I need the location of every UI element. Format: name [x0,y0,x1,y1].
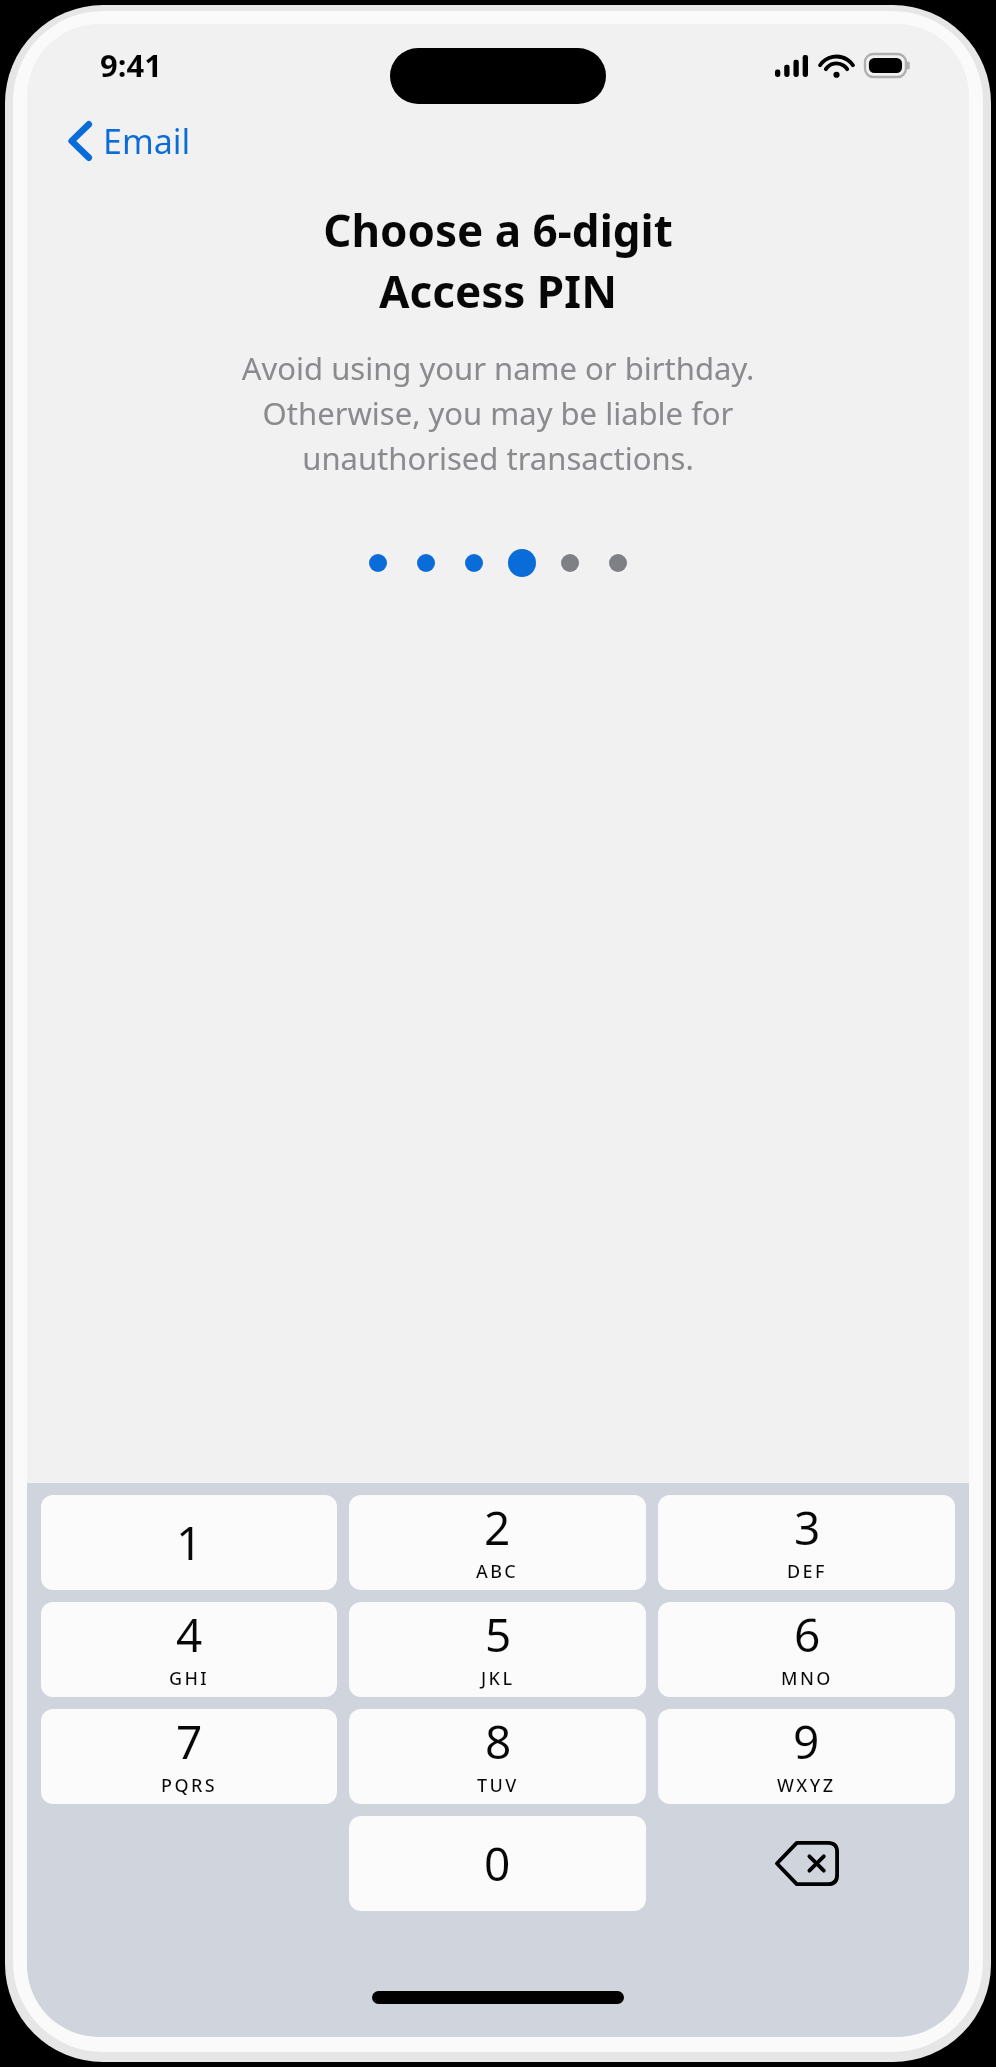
staticText: 9:41 [100,44,162,86]
button[interactable]: 1 [41,1495,337,1590]
staticText: Choose a 6-digit Access PIN [27,200,969,321]
staticText: ABC [476,1559,519,1584]
staticText: TUV [477,1773,519,1798]
staticText: 9 [793,1710,820,1773]
button[interactable]: 4 [41,1602,337,1697]
staticText: 2 [484,1496,511,1559]
button[interactable]: 5 [349,1602,646,1697]
staticText: GHI [169,1666,210,1691]
button[interactable]: 0 [349,1816,646,1911]
staticText: 6 [794,1603,821,1666]
staticText: DEF [787,1559,827,1584]
button[interactable]: 8 [349,1709,646,1804]
staticText: 8 [485,1710,512,1773]
staticText: MNO [781,1666,833,1691]
staticText: 0 [484,1832,511,1895]
button[interactable]: 2 [349,1495,646,1590]
button[interactable]: Email [55,108,209,174]
staticText: 5 [485,1603,512,1666]
staticText: JKL [481,1666,515,1691]
staticText: Avoid using your name or birthday. Other… [27,347,969,479]
button[interactable]: 7 [41,1709,337,1804]
staticText: PQRS [161,1773,217,1798]
staticText: 7 [176,1710,203,1773]
staticText: Email [103,118,191,164]
staticText: WXYZ [777,1773,836,1798]
button[interactable]: 3 [658,1495,955,1590]
button[interactable]: Delete [658,1816,955,1911]
staticText: 3 [794,1496,821,1559]
button[interactable]: 6 [658,1602,955,1697]
staticText: 1 [176,1511,203,1574]
staticText: 4 [176,1603,203,1666]
button[interactable]: 9 [658,1709,955,1804]
